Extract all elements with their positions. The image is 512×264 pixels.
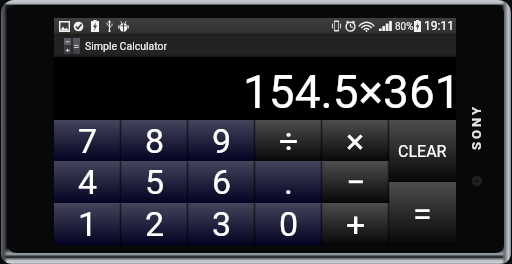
- staticText: 0: [279, 204, 299, 244]
- staticText: 3: [212, 204, 232, 244]
- button[interactable]: 3: [188, 203, 255, 245]
- staticText: −: [346, 162, 366, 202]
- staticText: 19:11: [424, 19, 454, 33]
- button[interactable]: 5: [121, 161, 188, 203]
- staticText: 154.5×361: [243, 65, 461, 119]
- staticText: ÷: [279, 121, 299, 161]
- button[interactable]: 0: [255, 203, 322, 245]
- button[interactable]: 8: [121, 120, 188, 161]
- button[interactable]: ÷: [255, 120, 322, 161]
- staticText: 8: [145, 121, 165, 161]
- staticText: 4: [78, 162, 98, 202]
- button[interactable]: 6: [188, 161, 255, 203]
- button[interactable]: ×: [322, 120, 389, 161]
- staticText: .: [284, 162, 293, 202]
- staticText: CLEAR: [398, 142, 447, 161]
- button[interactable]: −: [322, 161, 389, 203]
- staticText: 5: [145, 162, 165, 202]
- staticText: SONY: [469, 103, 484, 150]
- button[interactable]: +: [322, 203, 389, 245]
- button[interactable]: 9: [188, 120, 255, 161]
- button[interactable]: .: [255, 161, 322, 203]
- staticText: 2: [145, 204, 165, 244]
- staticText: +: [346, 204, 366, 244]
- staticText: 7: [78, 121, 98, 161]
- button[interactable]: =: [389, 182, 456, 245]
- staticText: 1: [78, 204, 98, 244]
- button[interactable]: 7: [54, 120, 121, 161]
- staticText: 80%: [395, 21, 414, 33]
- staticText: ×: [346, 121, 365, 161]
- button[interactable]: CLEAR: [389, 120, 456, 182]
- staticText: =: [413, 194, 432, 234]
- staticText: Simple Calculator: [85, 40, 168, 52]
- button[interactable]: 1: [54, 203, 121, 245]
- button[interactable]: 2: [121, 203, 188, 245]
- staticText: 6: [212, 162, 232, 202]
- staticText: 9: [212, 121, 232, 161]
- button[interactable]: 4: [54, 161, 121, 203]
